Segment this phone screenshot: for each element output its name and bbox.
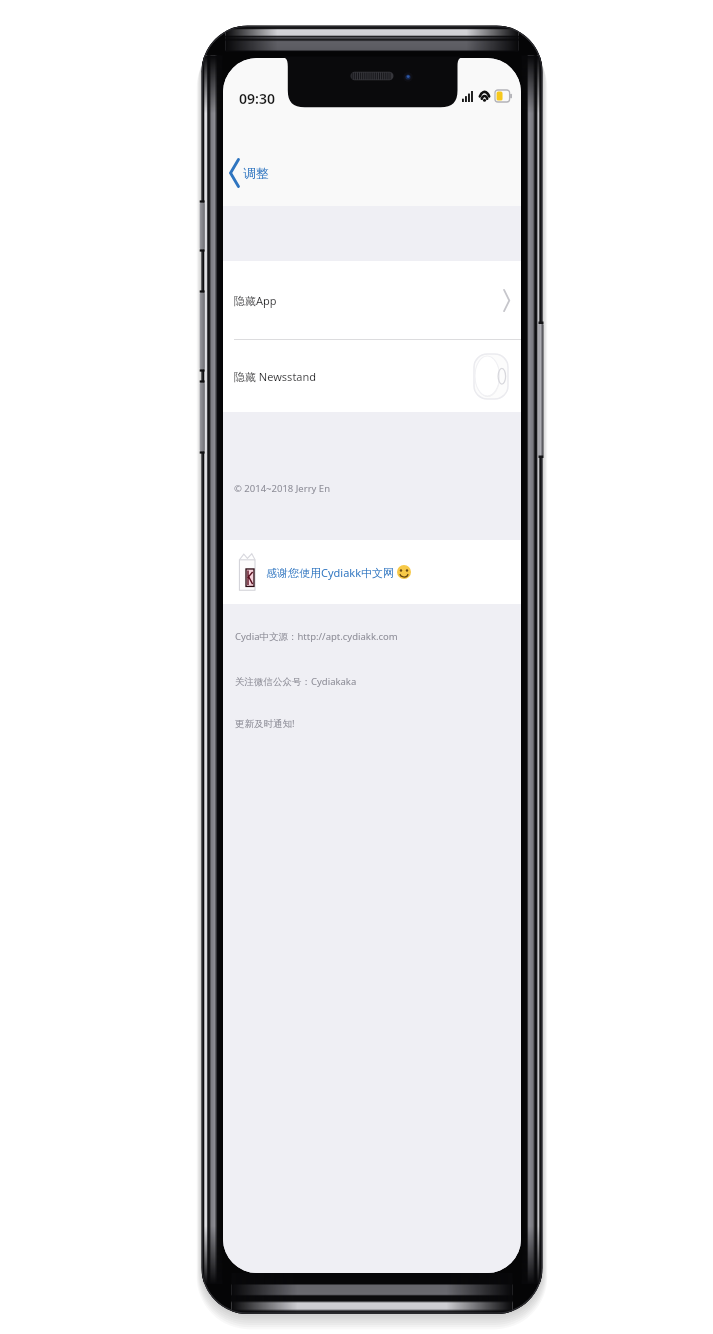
- staticText: 调整: [243, 165, 269, 181]
- staticText: 隐藏 Newsstand: [234, 369, 317, 384]
- button[interactable]: Back: [223, 153, 279, 193]
- staticText: 更新及时通知!: [235, 717, 295, 730]
- staticText: 隐藏App: [234, 293, 277, 308]
- button[interactable]: 隐藏App: [223, 261, 521, 339]
- staticText: 关注微信公众号：Cydiakaka: [235, 675, 357, 688]
- staticText: 09:30: [239, 89, 275, 108]
- staticText: © 2014~2018 Jerry En: [234, 482, 331, 495]
- staticText: Cydia中文源：http://apt.cydiakk.com: [235, 630, 398, 643]
- other: Back: [229, 158, 240, 188]
- staticText: 感谢您使用Cydiakk中文网: [266, 565, 397, 580]
- button[interactable]: 感谢您使用Cydiakk中文网: [223, 540, 521, 604]
- button[interactable]: Hide Newsstand toggle: [474, 354, 508, 399]
